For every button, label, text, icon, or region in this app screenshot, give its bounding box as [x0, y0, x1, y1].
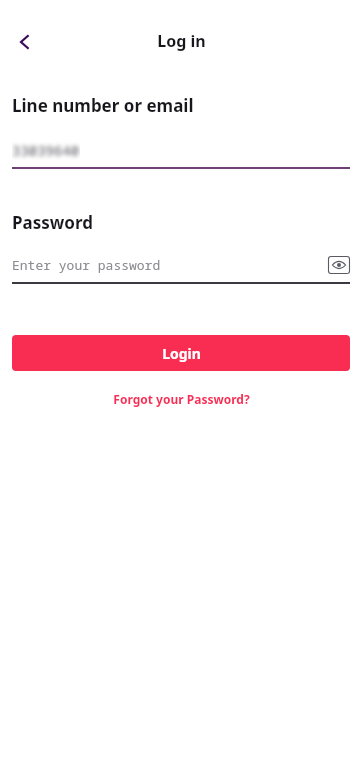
button[interactable]: Enter your password [12, 256, 328, 274]
staticText: 33039640 [12, 141, 80, 160]
button[interactable]: Show password [328, 256, 350, 274]
button[interactable]: 33039640 [12, 139, 350, 169]
button[interactable]: Forgot your Password? [105, 389, 258, 409]
staticText: Line number or email [12, 94, 194, 117]
staticText: Forgot your Password? [113, 391, 250, 407]
button[interactable]: Login [12, 335, 350, 371]
staticText: Password [12, 211, 93, 234]
button[interactable]: Back [6, 23, 44, 61]
staticText: Enter your password [12, 256, 161, 274]
staticText: Log in [157, 30, 206, 52]
staticText: Login [162, 344, 201, 363]
